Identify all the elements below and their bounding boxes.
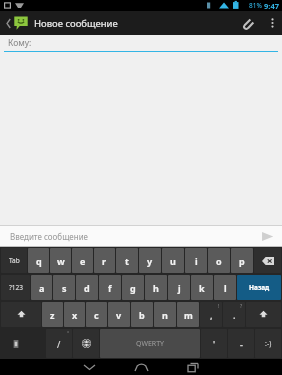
button[interactable]: k xyxy=(191,275,213,300)
button[interactable]: z xyxy=(42,302,63,327)
button[interactable]: globe xyxy=(73,329,99,358)
staticText: g xyxy=(130,282,136,294)
button[interactable]: Назад xyxy=(237,275,281,300)
button[interactable]: , xyxy=(200,302,222,327)
button[interactable]: t xyxy=(116,248,138,273)
button[interactable]: / xyxy=(46,329,72,358)
button[interactable]: v xyxy=(108,302,130,327)
button[interactable]: settings xyxy=(1,329,30,358)
staticText: q xyxy=(36,255,42,267)
button[interactable]: . xyxy=(223,302,245,327)
staticText: u xyxy=(170,255,176,267)
staticText: Назад xyxy=(249,283,270,292)
button[interactable]: l xyxy=(214,275,236,300)
button[interactable]: - xyxy=(228,329,254,358)
staticText: Tab xyxy=(9,256,20,265)
staticText: 9:47 xyxy=(264,1,279,11)
staticText: ' xyxy=(213,338,216,349)
button[interactable]: del xyxy=(254,248,281,273)
button[interactable]: h xyxy=(145,275,167,300)
button[interactable]: QWERTY xyxy=(100,329,200,358)
button[interactable]: w xyxy=(50,248,71,273)
staticText: 81% xyxy=(249,1,262,10)
staticText: v xyxy=(116,309,122,321)
button[interactable]: More options xyxy=(262,11,282,35)
staticText: ° xyxy=(67,330,70,337)
staticText: ? xyxy=(240,303,243,310)
staticText: y xyxy=(147,255,153,267)
staticText: r xyxy=(102,255,107,267)
staticText: k xyxy=(199,282,205,294)
button[interactable]: Attach xyxy=(232,11,262,35)
button[interactable]: d xyxy=(76,275,98,300)
staticText: l xyxy=(224,282,227,294)
button[interactable]: shift xyxy=(246,302,281,327)
staticText: d xyxy=(84,282,90,294)
staticText: f xyxy=(108,282,112,294)
staticText: a xyxy=(39,282,45,294)
staticText: ?123 xyxy=(9,283,23,292)
button[interactable]: ' xyxy=(201,329,227,358)
staticText: b xyxy=(139,309,145,321)
staticText: t xyxy=(125,255,129,267)
button[interactable]: Recents xyxy=(167,359,219,375)
staticText: Кому: xyxy=(8,37,32,49)
staticText: h xyxy=(153,282,159,294)
button[interactable]: m xyxy=(177,302,199,327)
staticText: / xyxy=(57,338,61,350)
button[interactable]: x xyxy=(64,302,85,327)
staticText: QWERTY xyxy=(136,339,165,349)
button[interactable]: g xyxy=(122,275,144,300)
button[interactable]: y xyxy=(139,248,161,273)
staticText: , xyxy=(210,309,213,321)
button[interactable]: e xyxy=(72,248,93,273)
staticText: c xyxy=(94,309,99,321)
staticText: Новое сообщение xyxy=(34,17,118,30)
button[interactable]: u xyxy=(162,248,184,273)
staticText: - xyxy=(240,338,243,350)
button[interactable]: shift xyxy=(1,302,41,327)
staticText: . xyxy=(233,309,236,321)
staticText: e xyxy=(80,255,86,267)
button[interactable]: b xyxy=(131,302,153,327)
button[interactable]: ?123 xyxy=(1,275,30,300)
button[interactable]: i xyxy=(185,248,207,273)
button[interactable]: n xyxy=(154,302,176,327)
button[interactable]: Кому: xyxy=(0,35,282,51)
button[interactable]: a xyxy=(31,275,52,300)
staticText: p xyxy=(239,255,245,267)
button[interactable]: c xyxy=(86,302,107,327)
staticText: o xyxy=(216,255,222,267)
staticText: j xyxy=(178,282,181,294)
button[interactable]: s xyxy=(53,275,75,300)
button[interactable]: o xyxy=(208,248,230,273)
button[interactable]: Send xyxy=(252,226,282,246)
button[interactable]: f xyxy=(99,275,121,300)
button[interactable]: Home xyxy=(115,359,167,375)
button[interactable]: Up xyxy=(0,11,34,35)
button[interactable]: r xyxy=(94,248,115,273)
button[interactable]: j xyxy=(168,275,190,300)
button[interactable]: Back xyxy=(63,359,115,375)
staticText: w xyxy=(57,255,65,267)
staticText: m xyxy=(184,309,193,321)
button[interactable]: Введите сообщение xyxy=(0,226,252,246)
staticText: n xyxy=(162,309,168,321)
staticText: i xyxy=(195,255,198,267)
staticText: Введите сообщение xyxy=(10,231,89,242)
staticText: :-) xyxy=(265,339,272,349)
button[interactable]: :-) xyxy=(255,329,281,358)
staticText: ! xyxy=(218,303,220,310)
staticText: x xyxy=(72,309,78,321)
button[interactable]: Tab xyxy=(1,248,27,273)
staticText: z xyxy=(50,309,55,321)
button[interactable]: p xyxy=(231,248,253,273)
button[interactable]: q xyxy=(28,248,49,273)
staticText: s xyxy=(62,282,67,294)
